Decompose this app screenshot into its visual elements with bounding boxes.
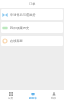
- staticText: 分类: [8, 96, 14, 99]
- staticText: 订单: [29, 2, 36, 6]
- staticText: 申请售后与退换货: [10, 13, 36, 17]
- staticText: 我的收藏历史: [10, 26, 30, 30]
- button[interactable]: 我的收藏历史: [1, 22, 63, 33]
- button[interactable]: 在线客服: [1, 36, 63, 46]
- staticText: 我的: [51, 96, 57, 99]
- staticText: 在线客服: [10, 39, 23, 43]
- other: 购物车: [31, 92, 35, 96]
- other: 我的: [52, 92, 56, 96]
- button[interactable]: 我的: [43, 90, 64, 100]
- button[interactable]: 分类: [0, 90, 22, 100]
- other: 分类: [9, 92, 13, 96]
- button[interactable]: 购物车: [22, 90, 43, 100]
- staticText: 购物车: [29, 96, 37, 99]
- button[interactable]: 申请售后与退换货: [1, 9, 63, 20]
